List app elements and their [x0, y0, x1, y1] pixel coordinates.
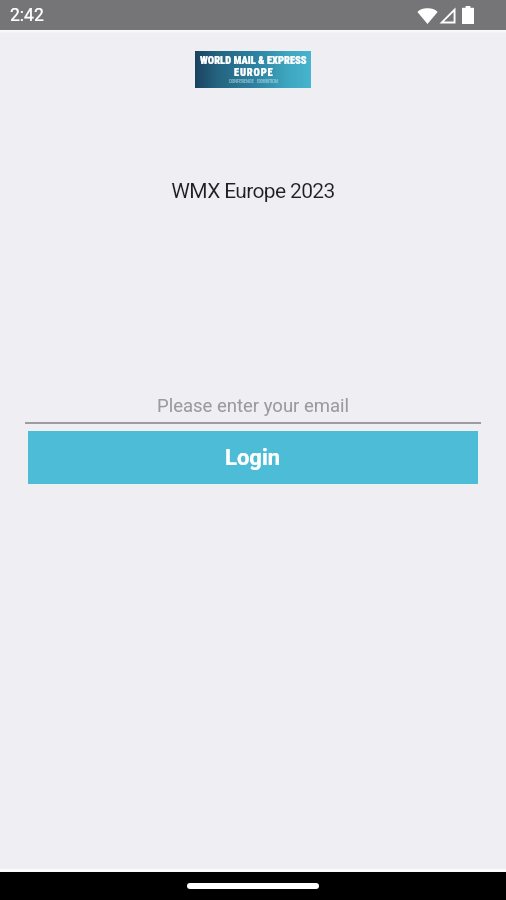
other: Home	[187, 883, 319, 889]
other: Battery	[462, 6, 474, 24]
staticText: WMX Europe 2023	[0, 179, 506, 204]
other: Signal	[439, 7, 456, 24]
staticText: Please enter your email	[25, 395, 481, 417]
button[interactable]: Please enter your email	[25, 393, 481, 424]
other: Wi-Fi	[417, 6, 438, 24]
staticText: CONFERENCE EXHIBITION	[229, 79, 278, 84]
button[interactable]: Login	[28, 431, 478, 484]
staticText: WORLD MAIL & EXPRESS	[200, 54, 307, 66]
staticText: Login	[225, 445, 281, 471]
staticText: EUROPE	[234, 66, 274, 78]
staticText: 2:42	[10, 5, 44, 26]
